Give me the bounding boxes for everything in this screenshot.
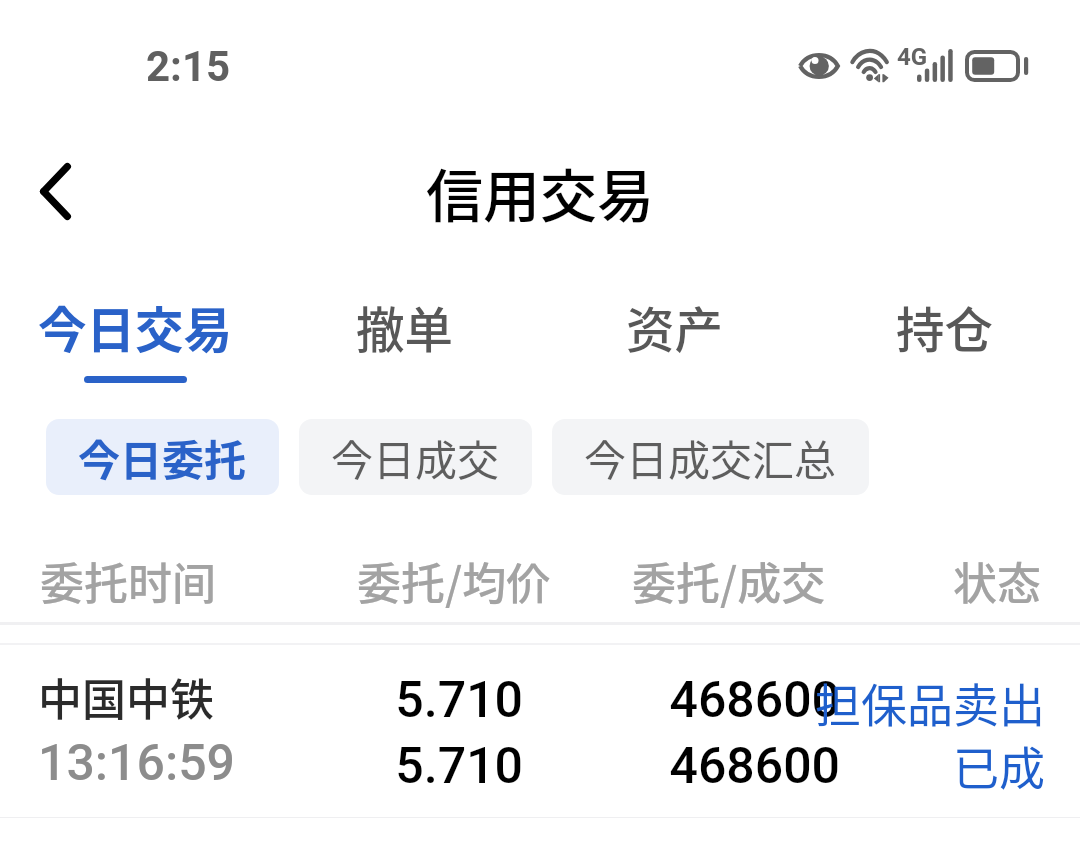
- button[interactable]: Back: [0, 130, 110, 252]
- staticText: 2:15: [146, 42, 231, 91]
- staticText: 撤单: [356, 292, 454, 362]
- staticText: 今日交易: [38, 292, 233, 362]
- button[interactable]: 撤单: [270, 292, 540, 387]
- staticText: 委托时间: [40, 549, 216, 613]
- staticText: 5.710: [273, 671, 523, 730]
- button[interactable]: 中国中铁: [0, 643, 1080, 817]
- button[interactable]: 今日成交: [299, 419, 532, 495]
- staticText: 5.710: [273, 737, 523, 796]
- button[interactable]: 持仓: [810, 292, 1080, 387]
- staticText: 资产: [626, 292, 724, 362]
- button[interactable]: 今日委托: [46, 419, 279, 495]
- staticText: 信用交易: [426, 151, 654, 234]
- staticText: 担保品卖出: [795, 669, 1045, 736]
- staticText: 今日成交: [331, 427, 500, 488]
- staticText: 今日成交汇总: [584, 427, 837, 488]
- button[interactable]: 资产: [540, 292, 810, 387]
- staticText: 已成: [795, 732, 1045, 799]
- staticText: 13:16:59: [38, 734, 236, 793]
- staticText: 468600: [590, 737, 840, 796]
- button[interactable]: 今日成交汇总: [552, 419, 869, 495]
- staticText: 468600: [590, 671, 840, 730]
- staticText: 今日委托: [78, 427, 247, 488]
- staticText: 委托/成交: [632, 549, 826, 613]
- staticText: 委托/均价: [357, 549, 551, 613]
- staticText: 持仓: [896, 292, 994, 362]
- staticText: 中国中铁: [38, 665, 214, 729]
- button[interactable]: 今日交易: [0, 292, 270, 387]
- staticText: 4G: [897, 43, 928, 71]
- staticText: 状态: [953, 549, 1041, 613]
